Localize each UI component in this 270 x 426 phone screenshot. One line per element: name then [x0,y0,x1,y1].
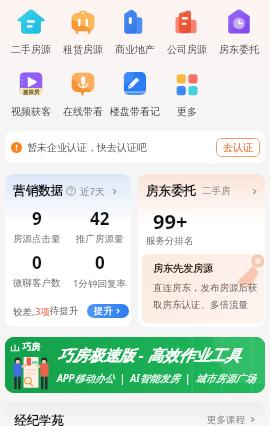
staticText: 巧房极速版 - 高效作业工具 [57,344,241,365]
staticText: 商业地产 [115,43,155,56]
staticText: 3项 [35,305,50,318]
staticText: APP移动办公 | AI智能发房 | 城市房源广场 [57,371,256,385]
staticText: 在线带看 [63,105,103,118]
button[interactable]: 营销数据 [5,174,131,327]
staticText: 99+ [153,208,188,235]
staticText: 视频获客 [11,105,51,118]
staticText: 二手房源 [11,43,51,56]
staticText: 楼盘带看记 [110,105,160,118]
button[interactable]: 房东先发房源 [142,254,264,323]
staticText: 租赁房源 [63,43,103,56]
button[interactable]: 楼盘带看记 [109,70,161,118]
staticText: 0 [95,251,105,274]
staticText: 营销数据 [13,183,63,199]
staticText: 经纪学苑 [14,413,64,426]
staticText: 直连房东，发布房源后获 取房东认证、多倍流量 [153,282,258,311]
staticText: 提升 [94,305,113,317]
button[interactable]: 房东委托 [213,8,265,56]
button[interactable]: 经纪学苑 [5,402,265,426]
staticText: 房源点击量 [13,233,61,245]
staticText: 房东先发房源 [153,262,213,275]
button[interactable]: 更多 [161,70,213,118]
staticText: 去认证 [223,141,253,154]
staticText: 近7天 [80,185,105,198]
staticText: 房东委托 [146,183,196,199]
staticText: 暂未企业认证，快去认证吧 [27,141,147,154]
staticText: 0 [32,251,42,274]
button[interactable]: 租赁房源 [57,8,109,56]
staticText: 更多 [177,105,197,118]
staticText: 推广房源量 [76,233,124,245]
button[interactable]: 在线带看 [57,70,109,118]
staticText: 9 [32,207,42,230]
button[interactable]: 去认证 [216,138,260,157]
staticText: 公司房源 [167,43,207,56]
staticText: 42 [90,207,110,230]
staticText: 微聊客户数 [13,277,61,289]
button[interactable]: 房东委托 [138,174,265,327]
staticText: 房东委托 [219,43,259,56]
button[interactable]: 巧房极速版广告 [5,337,265,393]
button[interactable]: 题探房 [5,70,57,118]
button[interactable]: 二手房源 [5,8,57,56]
staticText: 巧房 [22,341,40,352]
button[interactable]: 提升 [87,304,129,318]
staticText: 二手房 [202,185,231,197]
staticText: 题探房 [23,89,40,96]
staticText: 更多课程 [207,414,245,426]
staticText: 待提升 [50,305,79,317]
button[interactable]: 商业地产 [109,8,161,56]
button[interactable]: 暂未企业认证，快去认证吧 [5,131,265,163]
button[interactable]: 公司房源 [161,8,213,56]
staticText: 服务分排名 [146,235,194,247]
staticText: 较差, [13,305,35,318]
staticText: 1分钟回复率 [73,277,126,290]
